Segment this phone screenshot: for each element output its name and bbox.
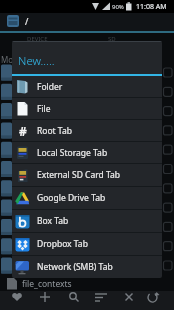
- staticText: Dropbox Tab: [37, 238, 88, 250]
- staticText: New.....: [18, 53, 55, 69]
- button[interactable]: /: [0, 13, 174, 31]
- staticText: file_contexts: [22, 278, 72, 290]
- button[interactable]: [145, 291, 174, 310]
- button[interactable]: [0, 291, 29, 310]
- button[interactable]: Dropbox Tab: [12, 233, 162, 255]
- button[interactable]: file_contexts: [0, 277, 174, 291]
- button[interactable]: Google Drive Tab: [12, 187, 162, 209]
- staticText: Mou: [1, 54, 19, 65]
- button[interactable]: [58, 291, 87, 310]
- button[interactable]: [29, 291, 58, 310]
- staticText: 11:08 AM: [136, 2, 167, 12]
- button[interactable]: Box Tab: [12, 210, 162, 232]
- staticText: File: [37, 103, 51, 115]
- staticText: SD: [108, 35, 116, 43]
- staticText: Box Tab: [37, 215, 69, 227]
- button[interactable]: [87, 291, 116, 310]
- button[interactable]: External SD Card Tab: [12, 164, 162, 186]
- button[interactable]: Network (SMB) Tab: [12, 256, 162, 278]
- staticText: External SD Card Tab: [37, 169, 121, 181]
- button[interactable]: File: [12, 98, 162, 119]
- staticText: Local Storage Tab: [37, 147, 108, 159]
- staticText: Folder: [37, 81, 63, 93]
- button[interactable]: Local Storage Tab: [12, 142, 162, 163]
- button[interactable]: Folder: [12, 76, 162, 97]
- staticText: Google Drive Tab: [37, 192, 106, 204]
- staticText: DEVICE: [27, 35, 48, 43]
- staticText: Root Tab: [37, 125, 72, 137]
- staticText: Network (SMB) Tab: [37, 261, 113, 273]
- staticText: 90%: [112, 3, 124, 11]
- button[interactable]: [116, 291, 145, 310]
- staticText: /: [25, 15, 29, 27]
- button[interactable]: #: [12, 120, 162, 141]
- staticText: #: [19, 123, 27, 138]
